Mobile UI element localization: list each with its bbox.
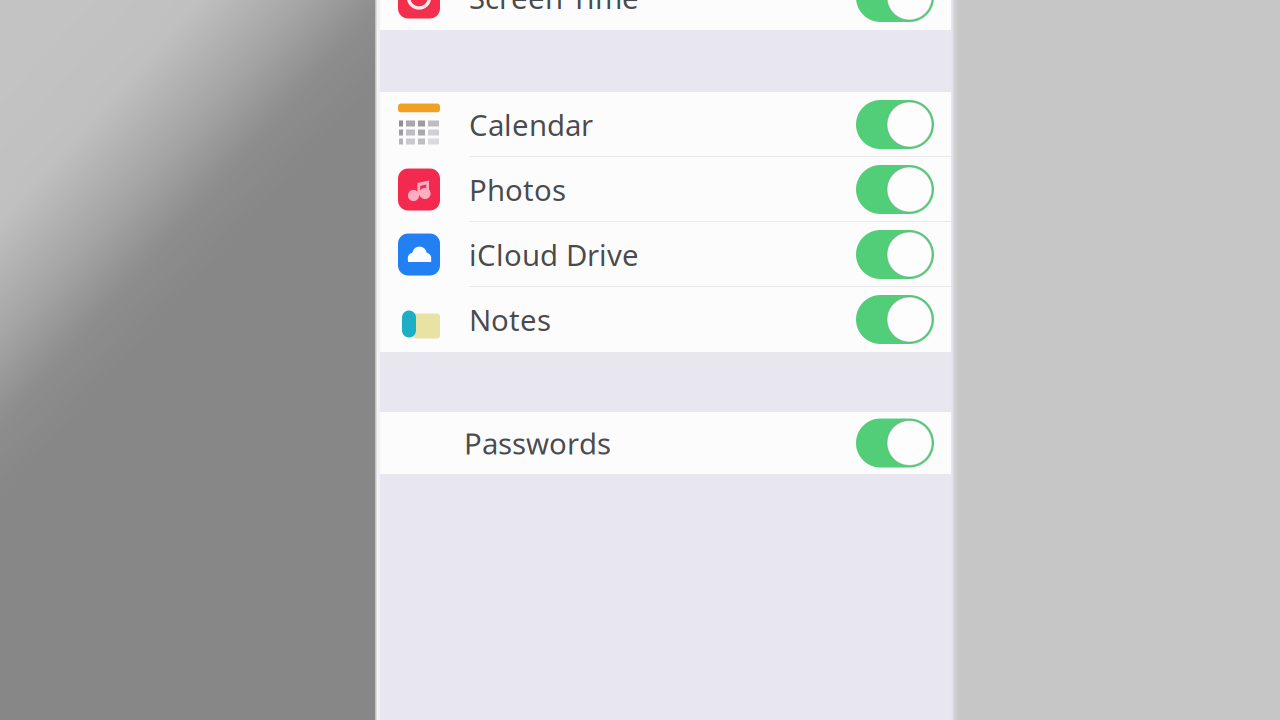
button[interactable]: Calendar — [376, 92, 954, 157]
staticText: Notes — [469, 300, 551, 339]
staticText: Screen Time — [469, 0, 639, 17]
button[interactable]: Notes — [376, 287, 954, 352]
staticText: Passwords — [464, 423, 611, 462]
button[interactable]: iCloud Drive — [376, 222, 954, 287]
staticText: iCloud Drive — [469, 235, 639, 274]
staticText: Calendar — [469, 105, 593, 144]
staticText: Photos — [469, 170, 566, 209]
button[interactable]: Passwords — [376, 412, 954, 474]
button[interactable]: Screen Time — [376, 0, 954, 30]
button[interactable]: Photos — [376, 157, 954, 222]
